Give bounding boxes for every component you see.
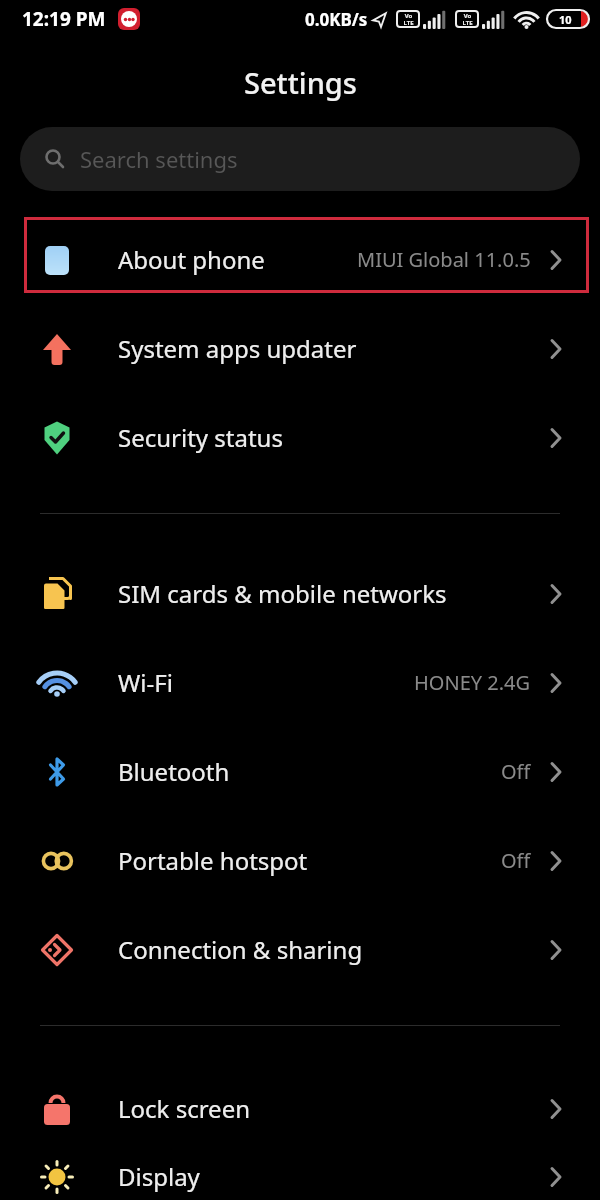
staticText: HONEY 2.4G bbox=[414, 669, 531, 696]
staticText: Vo LTE bbox=[403, 12, 414, 27]
button[interactable]: Connection & sharing bbox=[0, 905, 600, 994]
button[interactable]: System apps updater bbox=[0, 304, 600, 393]
button[interactable]: Search settings bbox=[20, 127, 580, 191]
staticText: About phone bbox=[118, 243, 265, 276]
staticText: Display bbox=[118, 1160, 200, 1193]
staticText: Off bbox=[501, 847, 531, 874]
staticText: Portable hotspot bbox=[118, 844, 308, 877]
staticText: Off bbox=[501, 758, 531, 785]
staticText: 0.0KB/s bbox=[305, 8, 368, 31]
button[interactable]: Lock screen bbox=[0, 1064, 600, 1153]
staticText: System apps updater bbox=[118, 332, 357, 365]
staticText: Bluetooth bbox=[118, 755, 230, 788]
button[interactable]: Display bbox=[0, 1153, 600, 1200]
staticText: Settings bbox=[244, 63, 357, 102]
staticText: 12:19 PM bbox=[22, 6, 106, 32]
staticText: 10 bbox=[559, 12, 572, 27]
button[interactable]: Wi-Fi bbox=[0, 638, 600, 727]
button[interactable]: SIM cards & mobile networks bbox=[0, 549, 600, 638]
staticText: Security status bbox=[118, 421, 283, 454]
staticText: Wi-Fi bbox=[118, 666, 173, 699]
staticText: SIM cards & mobile networks bbox=[118, 577, 447, 610]
staticText: Connection & sharing bbox=[118, 933, 363, 966]
staticText: MIUI Global 11.0.5 bbox=[357, 246, 531, 273]
button[interactable]: Bluetooth bbox=[0, 727, 600, 816]
staticText: Search settings bbox=[80, 144, 238, 174]
button[interactable]: Portable hotspot bbox=[0, 816, 600, 905]
staticText: Vo LTE bbox=[462, 12, 473, 27]
button[interactable]: About phone bbox=[0, 215, 600, 304]
staticText: Lock screen bbox=[118, 1092, 251, 1125]
button[interactable]: Security status bbox=[0, 393, 600, 482]
